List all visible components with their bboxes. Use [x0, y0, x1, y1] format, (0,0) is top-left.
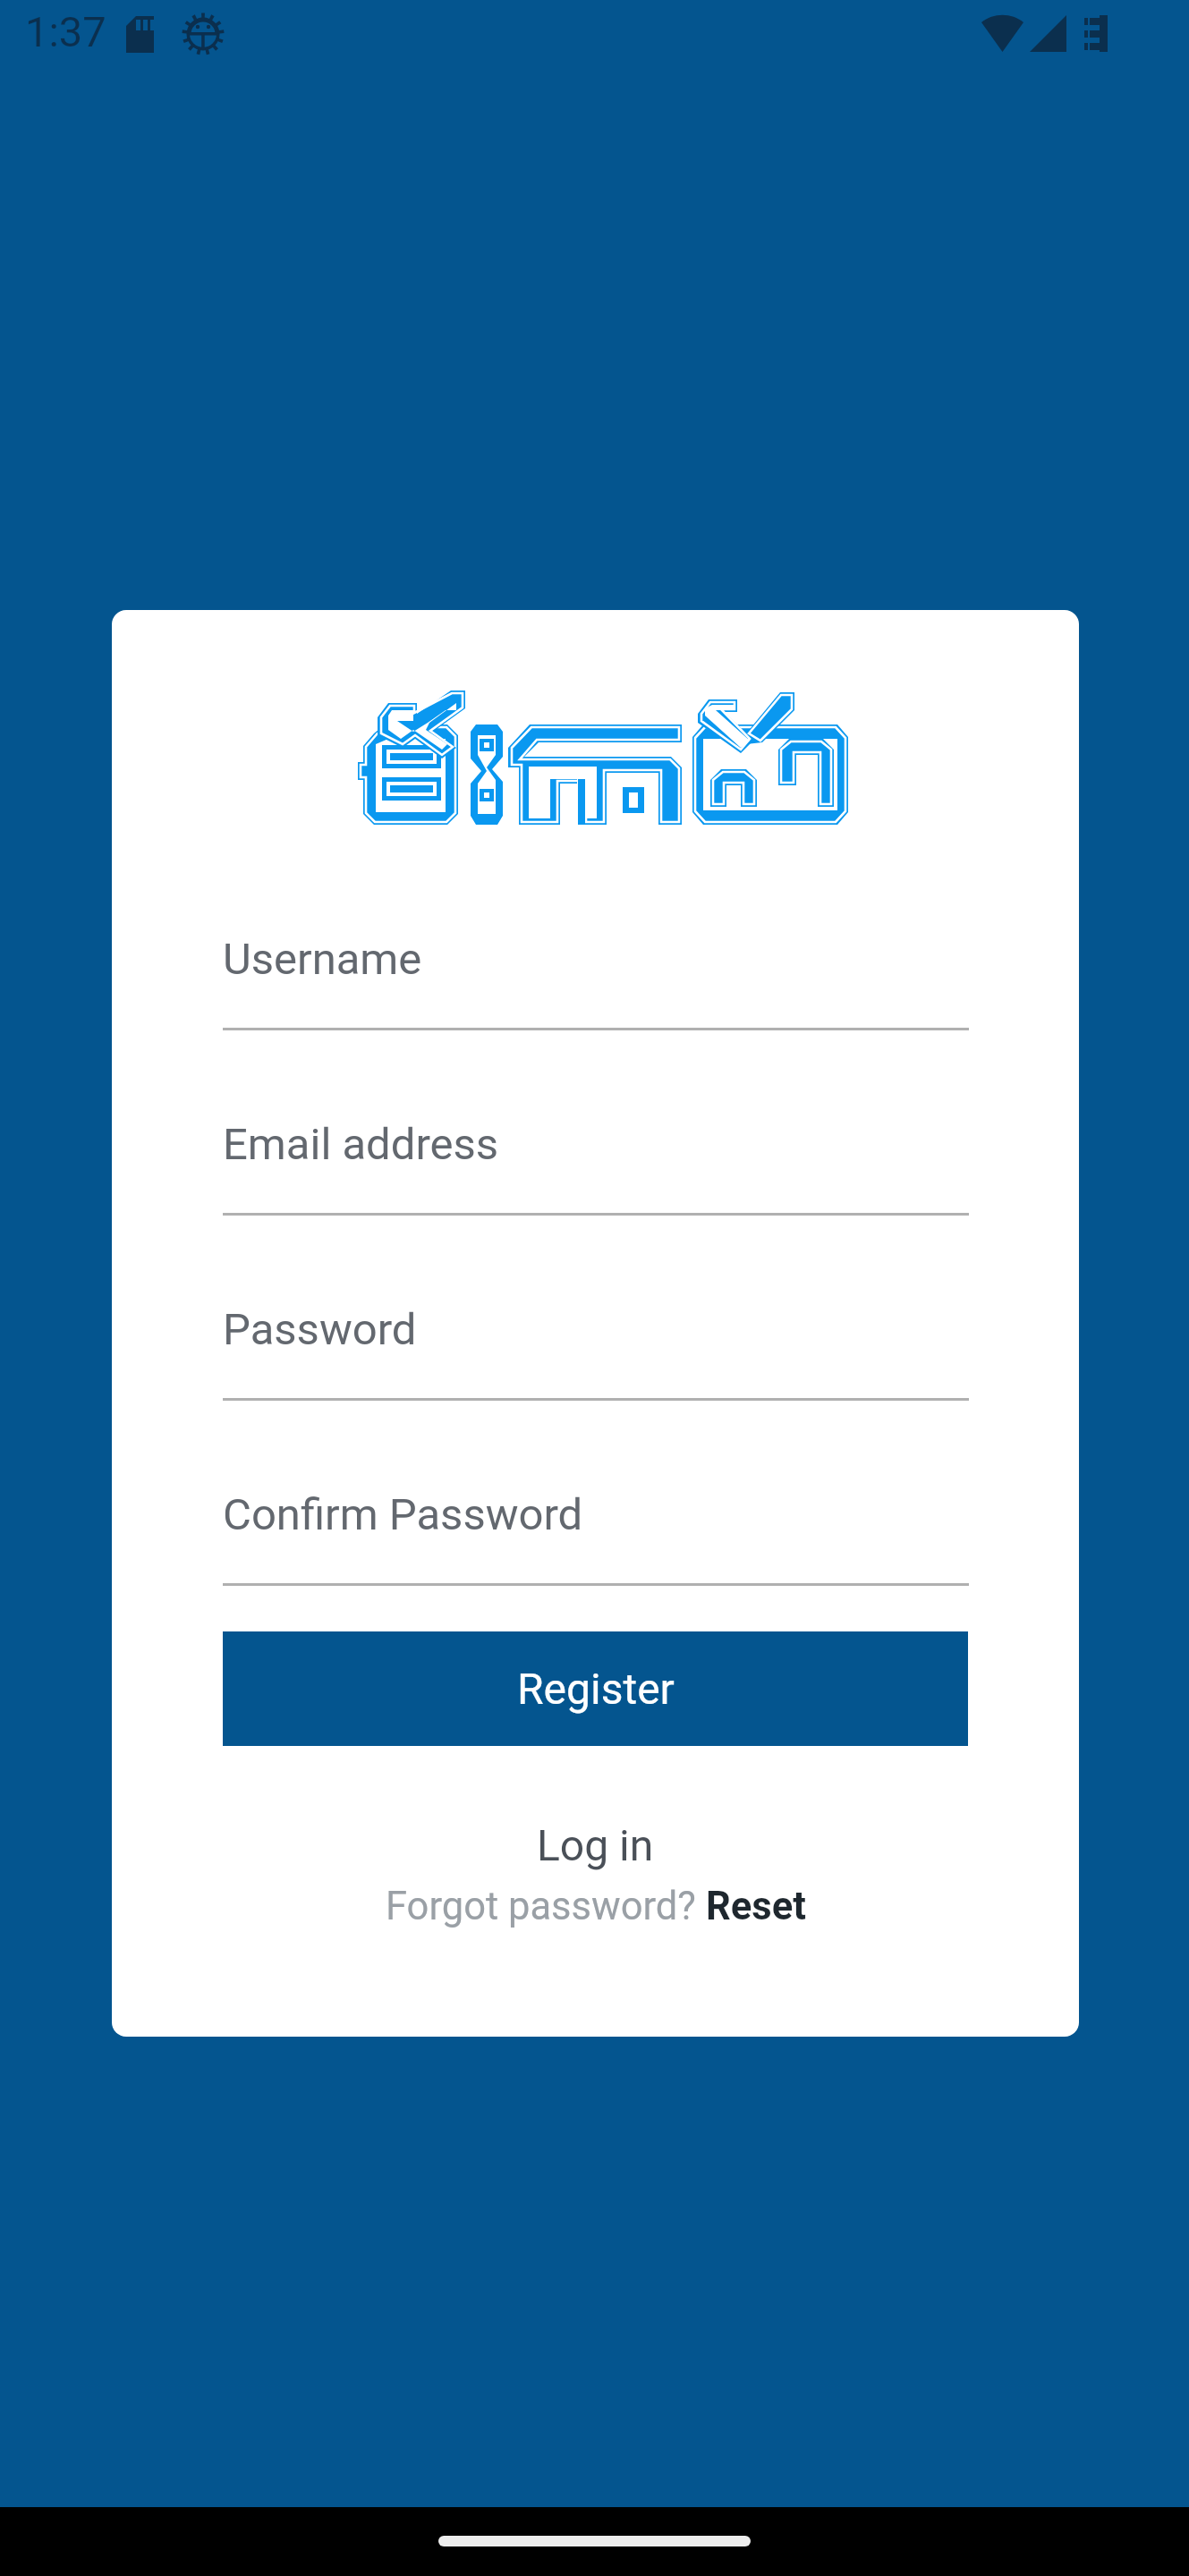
button[interactable]: Register [223, 1631, 968, 1746]
staticText: Confirm Password [223, 1489, 583, 1540]
staticText: Username [223, 934, 422, 985]
button[interactable]: Reset [706, 1879, 806, 1933]
staticText: Password [223, 1304, 417, 1355]
staticText: Email address [223, 1119, 499, 1170]
staticText: 1:37 [25, 7, 106, 56]
button[interactable]: Username [223, 934, 969, 1034]
button[interactable]: Email address [223, 1119, 969, 1219]
other: Status icons [0, 0, 1189, 89]
button[interactable]: Password [223, 1304, 969, 1404]
button[interactable]: Confirm Password [223, 1489, 969, 1589]
staticText: Register [517, 1664, 675, 1714]
other: Home [438, 2536, 751, 2546]
button[interactable]: Log in [112, 1817, 1079, 1874]
other: Eenadu logo [358, 691, 848, 828]
staticText: Forgot password? [386, 1884, 706, 1929]
staticText: Log in [537, 1820, 654, 1870]
staticText: Reset [706, 1884, 806, 1929]
